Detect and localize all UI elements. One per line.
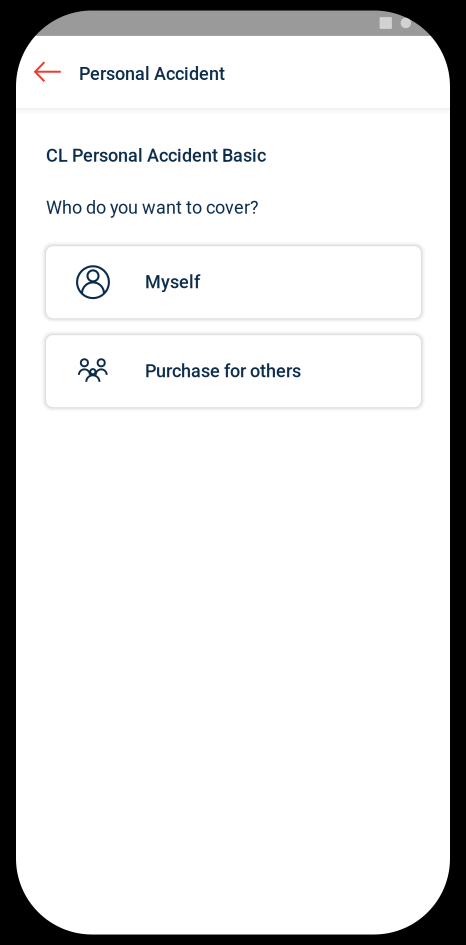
- button[interactable]: Myself: [46, 246, 421, 318]
- button[interactable]: Purchase for others: [46, 335, 421, 407]
- staticText: Purchase for others: [145, 361, 301, 382]
- staticText: CL Personal Accident Basic: [46, 145, 266, 166]
- staticText: Who do you want to cover?: [46, 197, 259, 218]
- staticText: Personal Accident: [79, 63, 225, 84]
- button[interactable]: Back: [16, 45, 79, 98]
- staticText: Myself: [145, 272, 200, 293]
